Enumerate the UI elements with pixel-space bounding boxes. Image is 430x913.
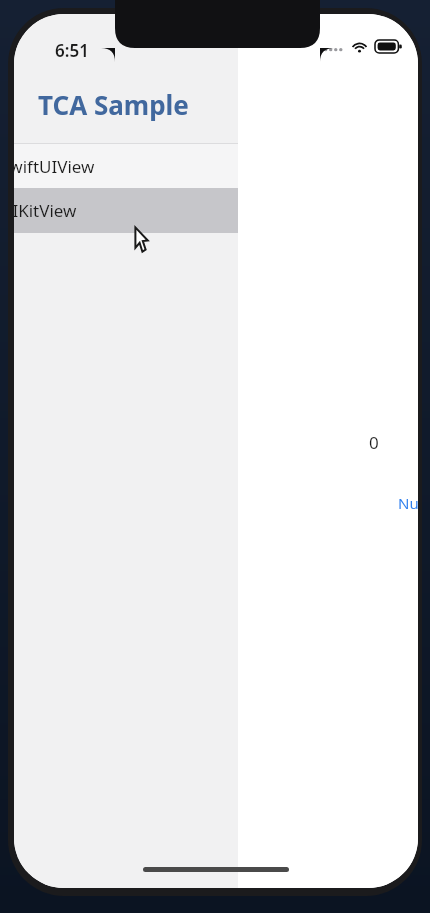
staticText: UIKitView [14,199,77,222]
staticText: 6:51 [55,39,89,62]
button[interactable]: SwiftUIView [14,144,238,188]
button[interactable]: UIKitView [14,188,238,233]
staticText: TCA Sample [38,87,189,122]
staticText: 0 [369,431,379,454]
staticText: Number fact [398,493,418,513]
button[interactable]: Number fact [398,493,418,513]
staticText: SwiftUIView [14,155,95,178]
